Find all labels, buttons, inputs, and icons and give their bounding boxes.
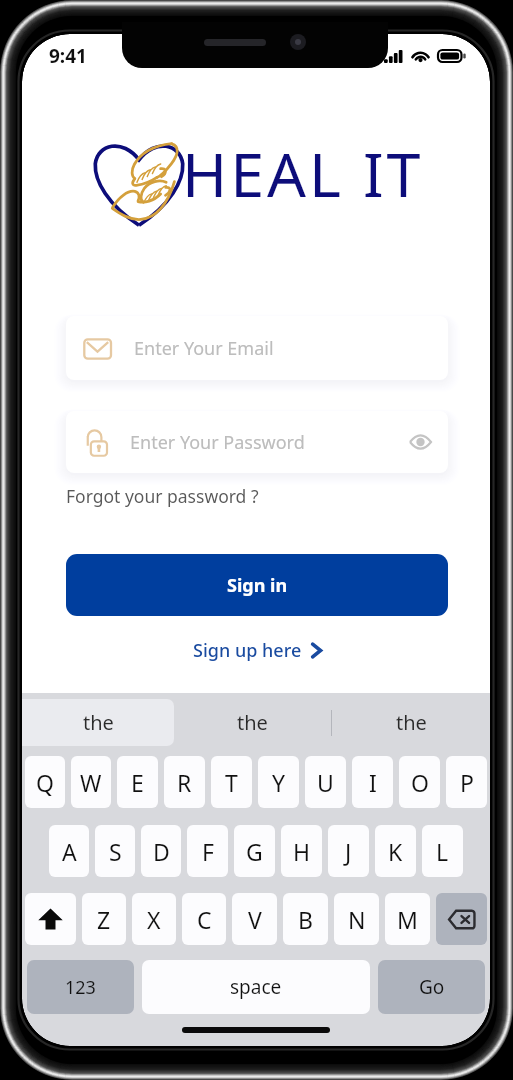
button[interactable]: the: [22, 699, 174, 746]
staticText: L: [436, 836, 449, 867]
button[interactable]: Backspace: [436, 893, 487, 945]
button[interactable]: the: [174, 699, 331, 746]
button[interactable]: D: [141, 825, 181, 877]
staticText: U: [317, 767, 334, 798]
button[interactable]: K: [375, 825, 416, 877]
button[interactable]: I: [352, 756, 393, 808]
button[interactable]: W: [71, 756, 111, 808]
button[interactable]: H: [281, 825, 322, 877]
button[interactable]: B: [283, 893, 328, 945]
staticText: E: [131, 767, 144, 798]
button[interactable]: Q: [25, 756, 65, 808]
button[interactable]: F: [187, 825, 228, 877]
button[interactable]: Sign in: [66, 554, 448, 616]
staticText: V: [248, 904, 262, 935]
staticText: W: [80, 767, 102, 798]
button[interactable]: Z: [82, 893, 126, 945]
button[interactable]: N: [334, 893, 379, 945]
staticText: N: [348, 904, 366, 935]
staticText: 123: [65, 975, 96, 1000]
button[interactable]: Enter Your Email: [66, 316, 448, 380]
button[interactable]: R: [164, 756, 205, 808]
button[interactable]: Enter Your Password: [66, 411, 448, 473]
staticText: M: [397, 904, 418, 935]
staticText: Go: [419, 974, 445, 1000]
staticText: F: [202, 836, 214, 867]
staticText: Enter Your Password: [130, 430, 305, 455]
button[interactable]: space: [142, 960, 370, 1014]
staticText: C: [197, 904, 212, 935]
staticText: HEAL IT: [182, 132, 424, 215]
staticText: Enter Your Email: [134, 336, 274, 361]
button[interactable]: Go: [378, 960, 485, 1014]
button[interactable]: M: [385, 893, 430, 945]
staticText: A: [62, 836, 77, 867]
button[interactable]: J: [328, 825, 369, 877]
staticText: Y: [272, 767, 286, 798]
staticText: the: [83, 709, 114, 736]
staticText: I: [369, 767, 377, 798]
staticText: T: [225, 767, 238, 798]
button[interactable]: O: [399, 756, 440, 808]
button[interactable]: Show password: [402, 424, 438, 460]
staticText: X: [147, 904, 161, 935]
staticText: B: [298, 904, 313, 935]
button[interactable]: Forgot your password ?: [66, 484, 259, 508]
staticText: G: [246, 836, 263, 867]
staticText: Sign up here: [193, 638, 302, 663]
staticText: Z: [97, 904, 111, 935]
button[interactable]: A: [49, 825, 89, 877]
button[interactable]: U: [305, 756, 346, 808]
button[interactable]: E: [117, 756, 158, 808]
staticText: the: [396, 709, 427, 736]
staticText: S: [109, 836, 122, 867]
staticText: Sign in: [227, 573, 288, 598]
staticText: P: [460, 767, 474, 798]
button[interactable]: V: [232, 893, 277, 945]
staticText: H: [293, 836, 311, 867]
button[interactable]: G: [234, 825, 275, 877]
staticText: the: [237, 709, 268, 736]
button[interactable]: P: [446, 756, 487, 808]
staticText: J: [345, 836, 352, 867]
button[interactable]: T: [211, 756, 252, 808]
button[interactable]: 123: [27, 960, 134, 1014]
button[interactable]: L: [422, 825, 463, 877]
staticText: O: [411, 767, 429, 798]
staticText: R: [177, 767, 192, 798]
staticText: space: [230, 974, 282, 1000]
staticText: Q: [36, 767, 54, 798]
button[interactable]: Sign up here: [66, 638, 448, 663]
button[interactable]: the: [332, 699, 490, 746]
button[interactable]: X: [132, 893, 176, 945]
staticText: D: [153, 836, 170, 867]
button[interactable]: C: [182, 893, 226, 945]
button[interactable]: Y: [258, 756, 299, 808]
button[interactable]: Shift: [25, 893, 76, 945]
staticText: 9:41: [49, 43, 87, 69]
button[interactable]: S: [95, 825, 135, 877]
staticText: K: [388, 836, 403, 867]
